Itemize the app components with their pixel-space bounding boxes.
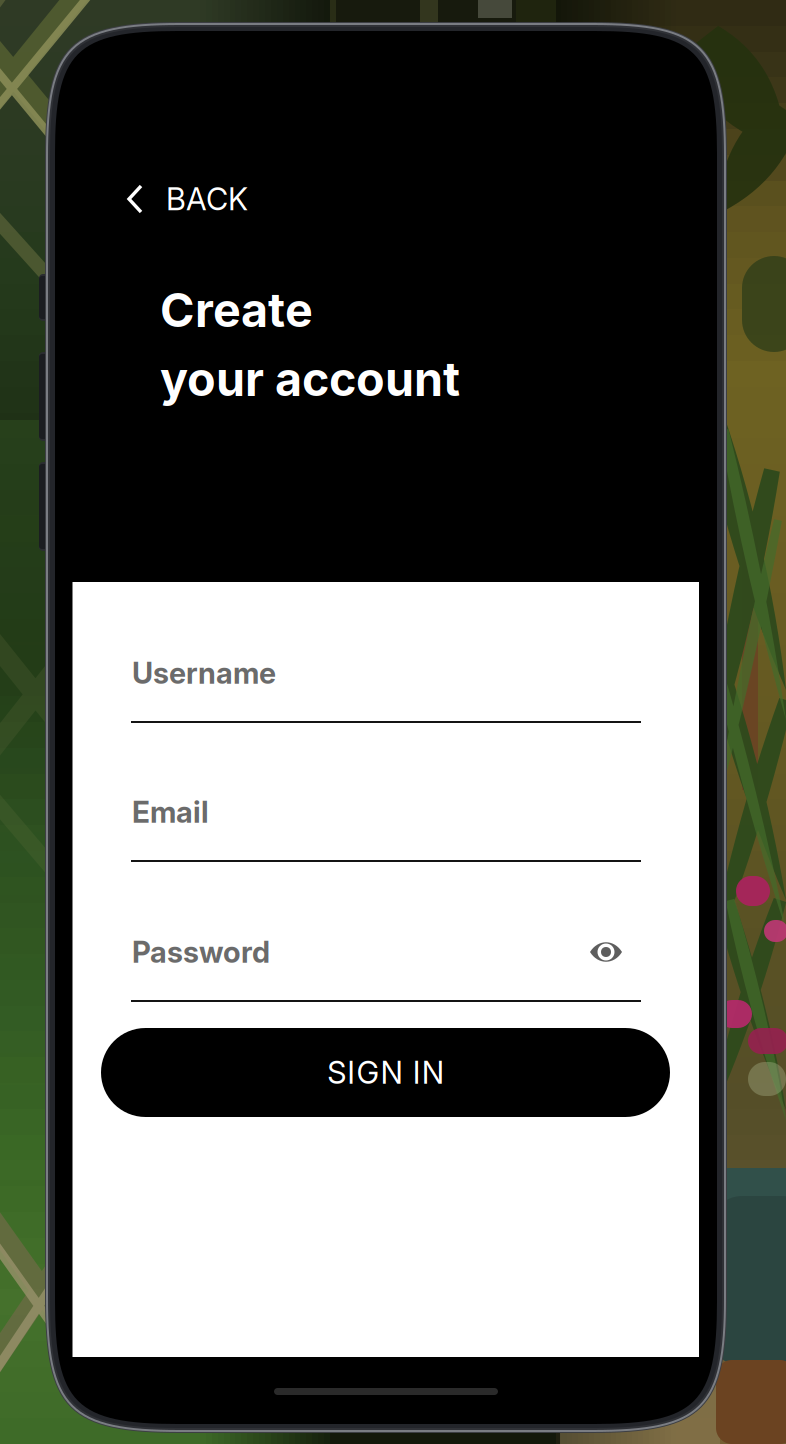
button[interactable]: SIGN IN (101, 1028, 670, 1117)
staticText: BACK (166, 180, 248, 217)
staticText: Create (160, 282, 313, 338)
staticText: SIGN IN (327, 1054, 444, 1091)
button[interactable]: BACK (126, 170, 316, 228)
button[interactable]: Show password (588, 934, 624, 970)
staticText: your account (160, 351, 460, 407)
staticText: Username (132, 655, 276, 691)
staticText: Email (132, 794, 209, 830)
staticText: Password (132, 934, 270, 970)
